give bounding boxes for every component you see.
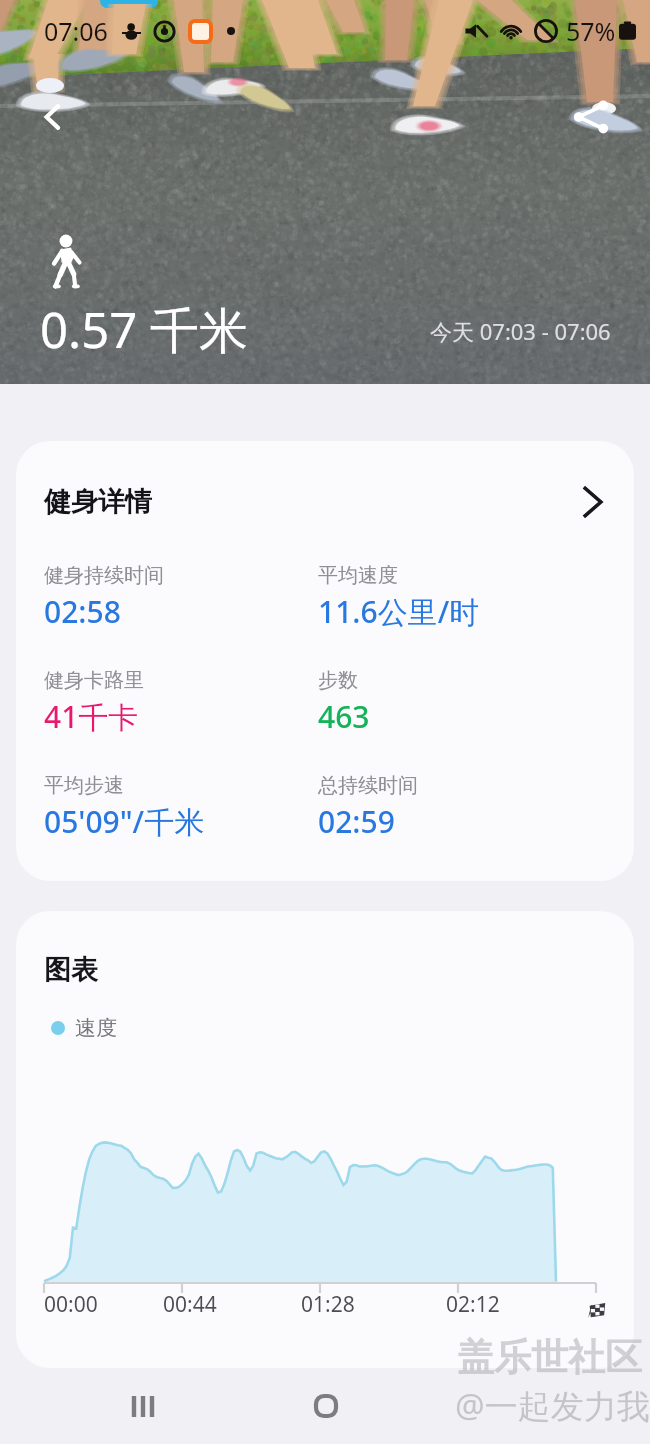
staticText: 02:58 (44, 591, 121, 632)
staticText: 步数 (318, 668, 358, 693)
staticText: @一起发力我 (455, 1383, 650, 1428)
staticText: 11.6公里/时 (318, 591, 480, 632)
button[interactable]: 健身详情 (16, 441, 634, 563)
staticText: 0.57 千米 (40, 296, 248, 363)
staticText: 02:59 (318, 801, 395, 842)
staticText: 健身持续时间 (44, 563, 164, 588)
staticText: 平均步速 (44, 773, 124, 798)
staticText: 07:06 (44, 14, 108, 48)
staticText: 463 (318, 696, 370, 737)
staticText: 今天 07:03 - 07:06 (430, 316, 611, 346)
staticText: 00:44 (163, 1290, 217, 1319)
staticText: 02:12 (446, 1290, 500, 1319)
button[interactable]: Recents (103, 1368, 183, 1444)
staticText: 05'09"/千米 (44, 801, 205, 842)
staticText: 图表 (44, 953, 98, 987)
staticText: 健身详情 (44, 485, 152, 519)
staticText: 盖乐世社区 (457, 1334, 642, 1381)
button[interactable]: Home (286, 1368, 366, 1444)
button[interactable]: Share (560, 86, 622, 148)
staticText: 00:00 (44, 1290, 98, 1319)
staticText: 健身卡路里 (44, 668, 144, 693)
button[interactable]: Back (22, 86, 84, 148)
staticText: 总持续时间 (318, 773, 418, 798)
staticText: 57% (566, 14, 616, 48)
staticText: 01:28 (301, 1290, 355, 1319)
staticText: 速度 (75, 1015, 117, 1041)
staticText: 41千卡 (44, 696, 139, 737)
button[interactable]: Back (470, 1368, 550, 1444)
staticText: 平均速度 (318, 563, 398, 588)
